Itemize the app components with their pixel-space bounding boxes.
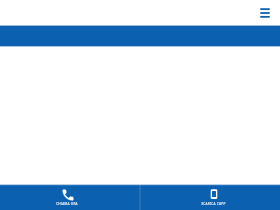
button[interactable]: SCARICA L'APP — [141, 184, 280, 210]
button[interactable]: Open menu — [258, 6, 272, 20]
staticText: SCARICA L'APP — [201, 202, 226, 206]
staticText: CHIAMA ORA — [56, 202, 78, 206]
button[interactable]: CHIAMA ORA — [0, 184, 139, 210]
